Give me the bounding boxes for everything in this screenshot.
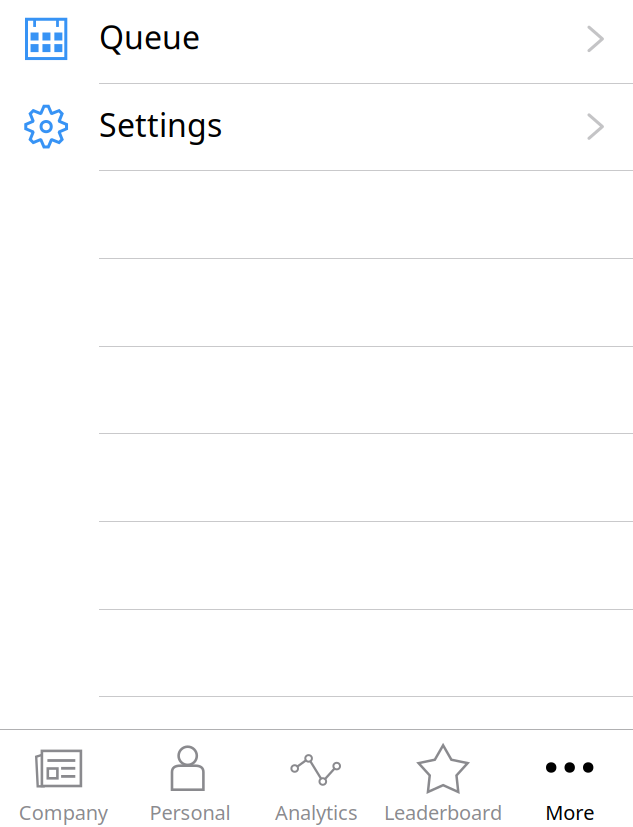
button[interactable]: Company	[0, 729, 127, 827]
button[interactable]: Queue	[0, 0, 633, 83]
staticText: More	[545, 799, 594, 825]
staticText: Queue	[99, 16, 200, 58]
staticText: Company	[19, 799, 108, 825]
staticText: Settings	[99, 103, 222, 146]
staticText: Leaderboard	[384, 799, 502, 825]
button[interactable]: More	[506, 729, 633, 827]
staticText: Personal	[149, 799, 230, 825]
button[interactable]: Personal	[127, 729, 253, 827]
staticText: Analytics	[275, 799, 358, 825]
button[interactable]: Leaderboard	[380, 729, 506, 827]
button[interactable]: Analytics	[253, 729, 380, 827]
button[interactable]: Settings	[0, 83, 633, 170]
